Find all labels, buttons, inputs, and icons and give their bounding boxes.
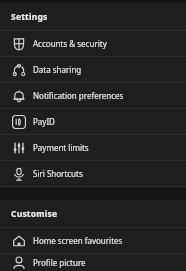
button[interactable]: Data sharing [0,57,186,82]
staticText: Profile picture [33,257,86,268]
staticText: Settings [11,11,48,23]
staticText: Siri Shortcuts [33,168,83,179]
button[interactable]: Profile picture [0,254,186,271]
staticText: PayID [33,116,55,127]
button[interactable]: Siri Shortcuts [0,161,186,186]
button[interactable]: Notification preferences [0,83,186,108]
button[interactable]: PayID [0,109,186,134]
staticText: Accounts & security [33,38,107,49]
staticText: Notification preferences [33,90,124,101]
button[interactable]: Payment limits [0,135,186,160]
button[interactable]: Home screen favourites [0,228,186,253]
staticText: Customise [11,208,58,220]
button[interactable]: Accounts & security [0,31,186,56]
staticText: Home screen favourites [33,235,123,246]
staticText: Data sharing [33,64,82,75]
staticText: Payment limits [33,142,89,153]
